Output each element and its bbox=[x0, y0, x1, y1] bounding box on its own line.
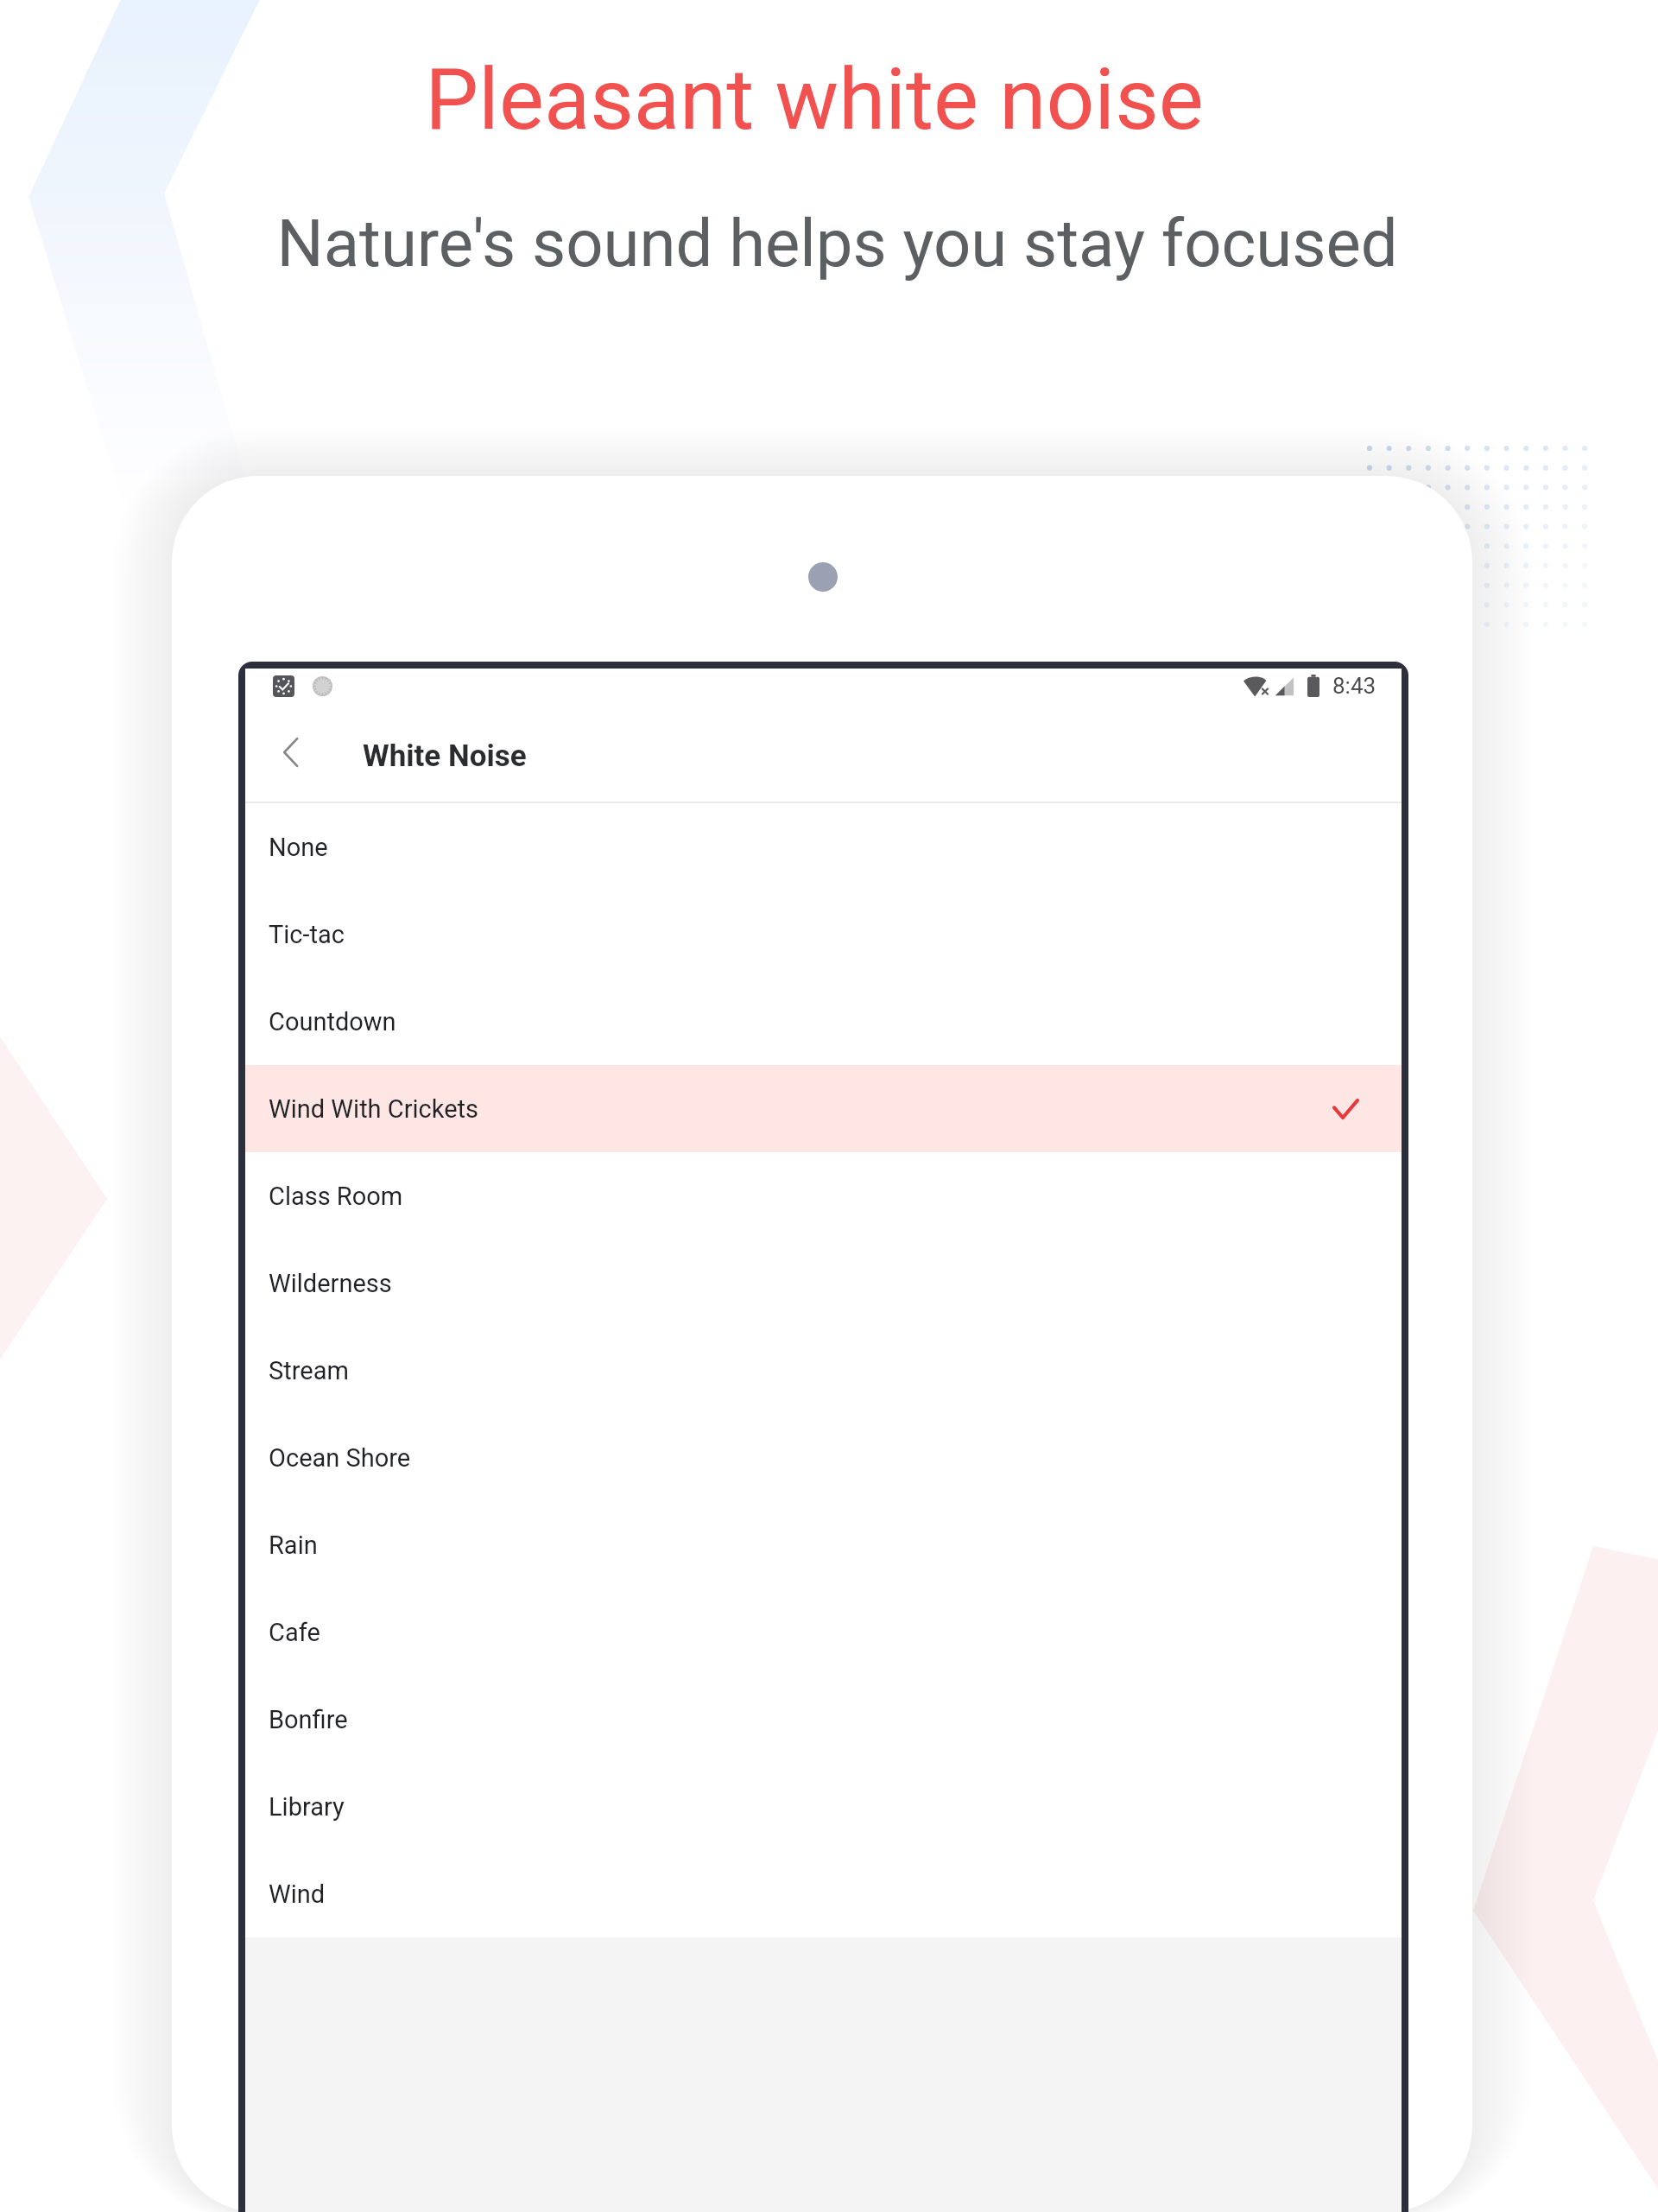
staticText: Bonfire bbox=[269, 1705, 348, 1734]
button[interactable]: Tic-tac bbox=[245, 891, 1402, 978]
staticText: Rain bbox=[269, 1531, 318, 1560]
staticText: Class Room bbox=[269, 1182, 403, 1211]
button[interactable]: Stream bbox=[245, 1327, 1402, 1414]
button[interactable]: None bbox=[245, 803, 1402, 891]
staticText: White Noise bbox=[363, 738, 527, 774]
button[interactable]: Rain bbox=[245, 1501, 1402, 1588]
staticText: Wilderness bbox=[269, 1269, 392, 1298]
staticText: Ocean Shore bbox=[269, 1443, 411, 1473]
button[interactable]: Ocean Shore bbox=[245, 1414, 1402, 1501]
staticText: 8:43 bbox=[1332, 673, 1376, 699]
button[interactable]: Cafe bbox=[245, 1588, 1402, 1676]
button[interactable]: Back bbox=[245, 703, 336, 802]
staticText: Nature's sound helps you stay focused bbox=[276, 205, 1398, 282]
staticText: Library bbox=[269, 1792, 345, 1822]
staticText: Wind bbox=[269, 1879, 326, 1909]
staticText: Cafe bbox=[269, 1618, 320, 1647]
button[interactable]: Class Room bbox=[245, 1152, 1402, 1239]
staticText: Tic-tac bbox=[269, 920, 345, 949]
button[interactable]: Library bbox=[245, 1763, 1402, 1850]
button[interactable]: Bonfire bbox=[245, 1676, 1402, 1763]
button[interactable]: Wind With Crickets bbox=[245, 1065, 1402, 1152]
staticText: Pleasant white noise bbox=[425, 50, 1204, 149]
button[interactable]: Wilderness bbox=[245, 1239, 1402, 1327]
button[interactable]: Wind bbox=[245, 1850, 1402, 1937]
staticText: None bbox=[269, 833, 328, 862]
button[interactable]: Countdown bbox=[245, 978, 1402, 1065]
staticText: Wind With Crickets bbox=[269, 1094, 478, 1124]
staticText: Stream bbox=[269, 1356, 349, 1385]
staticText: Countdown bbox=[269, 1007, 396, 1036]
